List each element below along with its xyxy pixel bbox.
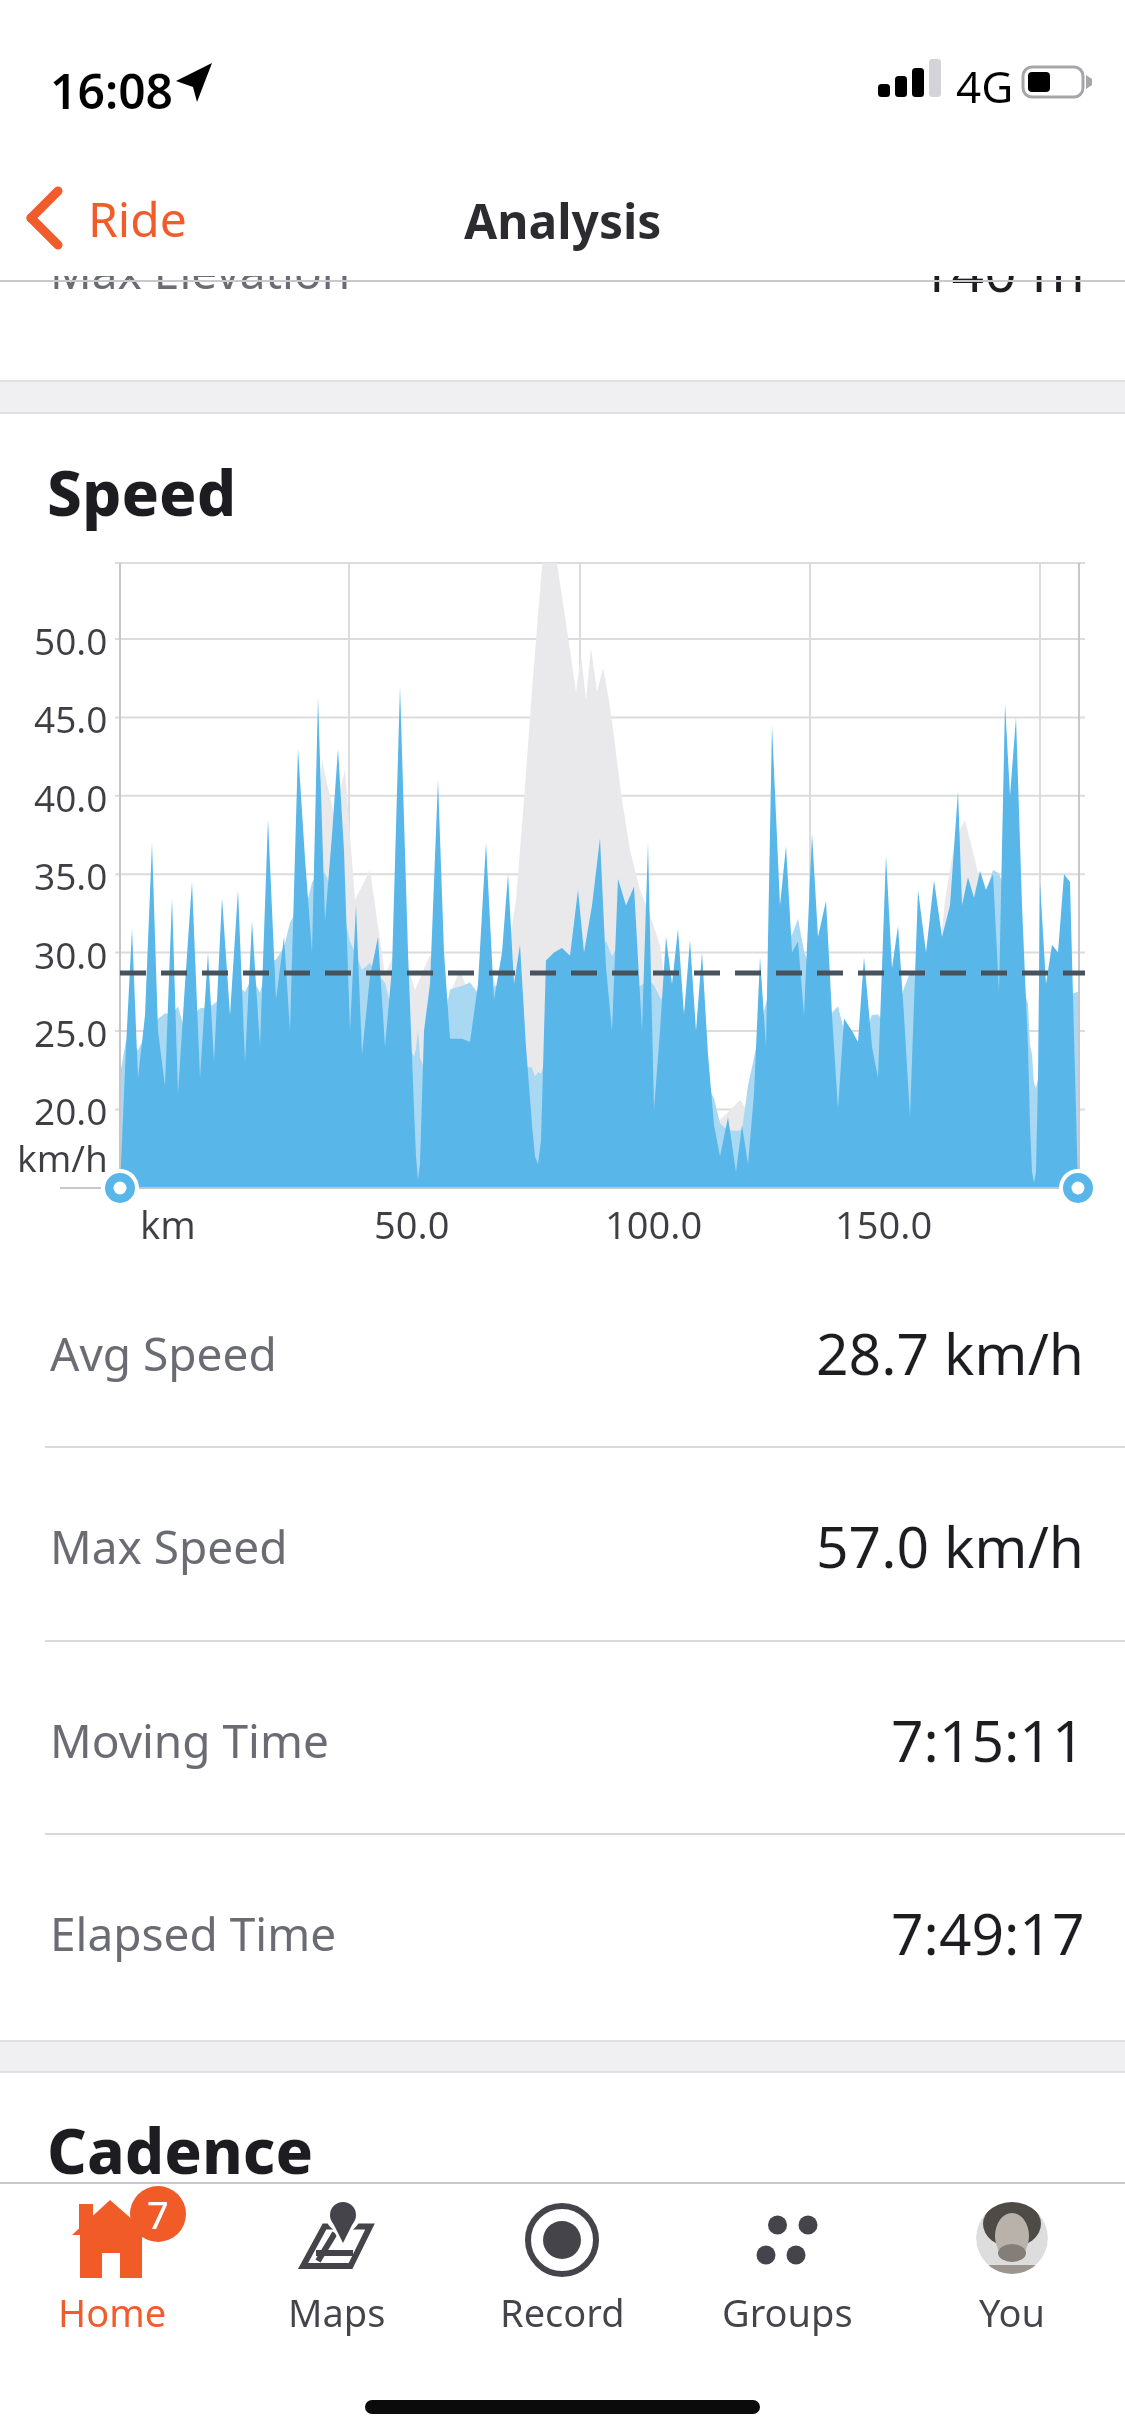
staticText: Moving Time xyxy=(50,1709,329,1772)
staticText: 7:49:17 xyxy=(891,1894,1085,1972)
staticText: Home xyxy=(58,2286,167,2338)
button[interactable]: Ride xyxy=(14,178,214,260)
staticText: 30.0 xyxy=(34,929,108,979)
staticText: Max Elevation xyxy=(50,240,351,303)
staticText: 150.0 xyxy=(835,1198,933,1250)
button[interactable]: You xyxy=(922,2186,1102,2346)
staticText: 50.0 xyxy=(34,615,108,665)
staticText: Speed xyxy=(47,450,237,534)
staticText: Groups xyxy=(722,2286,853,2338)
staticText: Ride xyxy=(88,186,187,251)
staticText: 25.0 xyxy=(34,1007,108,1057)
button[interactable]: Avg Speed xyxy=(0,1290,1125,1410)
staticText: 40.0 xyxy=(34,772,108,822)
button[interactable]: Maps xyxy=(247,2186,427,2346)
staticText: 4G xyxy=(956,56,1014,116)
staticText: Analysis xyxy=(464,188,662,253)
button[interactable]: Max Speed xyxy=(0,1483,1125,1603)
staticText: 7 xyxy=(147,2188,169,2240)
staticText: 45.0 xyxy=(34,693,108,743)
staticText: 16:08 xyxy=(50,58,174,123)
staticText: You xyxy=(979,2286,1046,2338)
button[interactable]: Groups xyxy=(697,2186,877,2346)
staticText: 140 m xyxy=(919,231,1085,309)
staticText: Elapsed Time xyxy=(50,1902,337,1965)
staticText: Cadence xyxy=(47,2108,314,2192)
staticText: 28.7 km/h xyxy=(816,1314,1085,1392)
staticText: 7:15:11 xyxy=(891,1701,1085,1779)
staticText: 57.0 km/h xyxy=(816,1507,1085,1585)
staticText: 20.0 xyxy=(34,1085,108,1135)
staticText: Record xyxy=(500,2286,625,2338)
staticText: km/h xyxy=(17,1132,108,1182)
button[interactable]: Home xyxy=(22,2186,202,2346)
staticText: Max Speed xyxy=(50,1515,288,1578)
staticText: 50.0 xyxy=(374,1198,450,1250)
staticText: Avg Speed xyxy=(50,1322,277,1385)
button[interactable]: Moving Time xyxy=(0,1677,1125,1797)
staticText: 35.0 xyxy=(34,850,108,900)
staticText: km xyxy=(140,1198,196,1250)
staticText: Maps xyxy=(288,2286,386,2338)
button[interactable]: Elapsed Time xyxy=(0,1870,1125,1990)
button[interactable]: Record xyxy=(472,2186,652,2346)
staticText: 100.0 xyxy=(605,1198,703,1250)
